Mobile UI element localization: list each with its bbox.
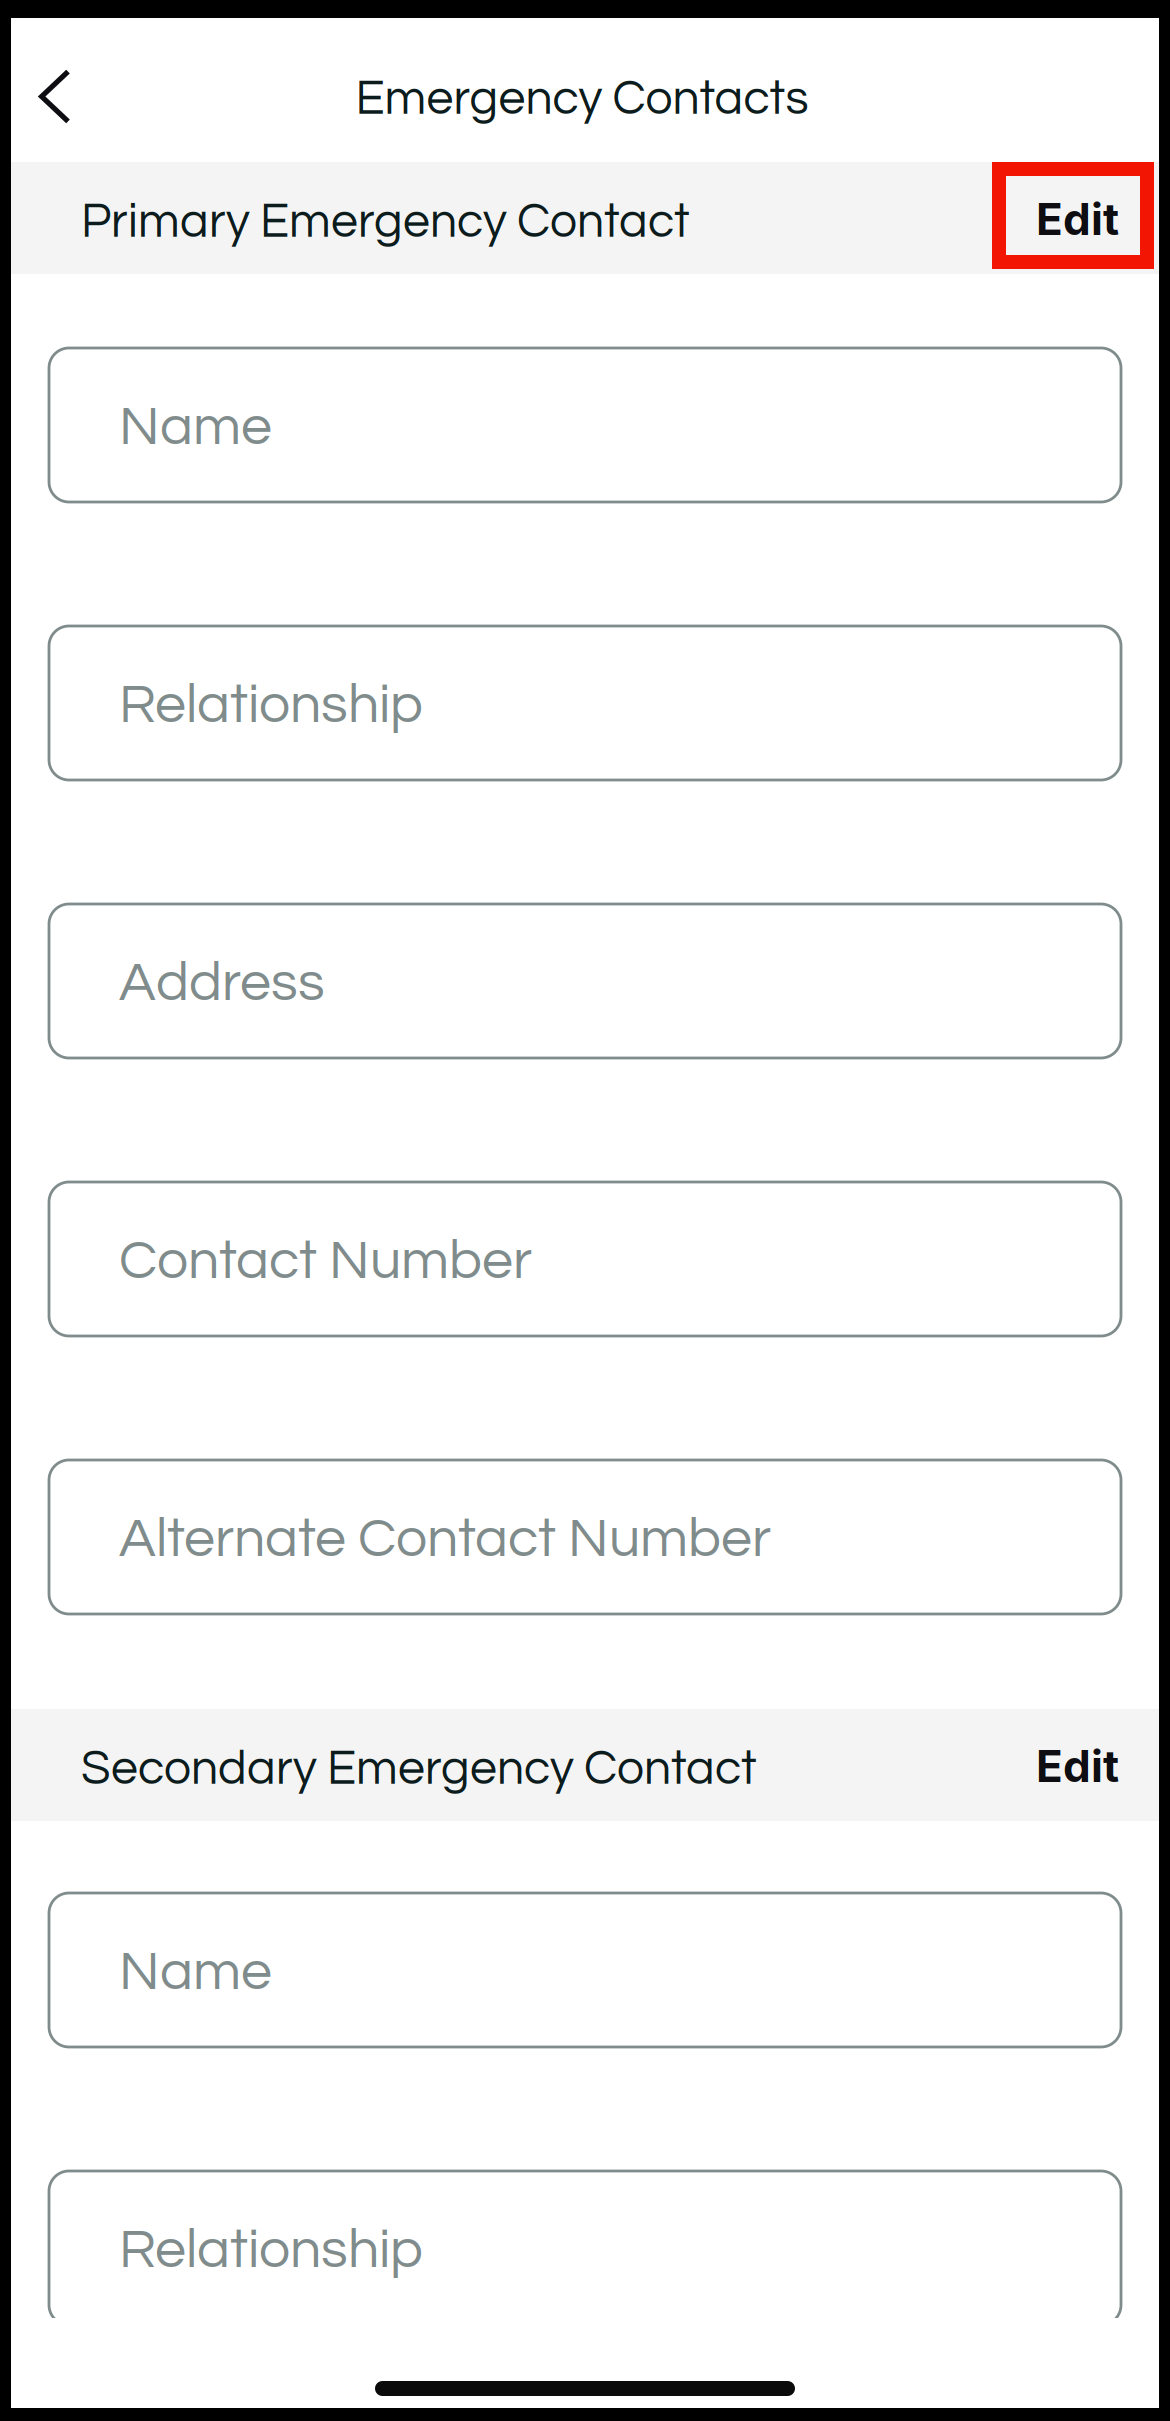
button[interactable]: Edit (959, 1709, 1119, 1821)
staticText: Primary Emergency Contact (81, 197, 690, 247)
button[interactable]: Relationship (49, 626, 1121, 780)
button[interactable]: Edit (959, 162, 1119, 274)
button[interactable]: Address (49, 904, 1121, 1058)
staticText: Emergency Contacts (355, 74, 808, 124)
staticText: Alternate Contact Number (119, 1510, 771, 1567)
staticText: Edit (1036, 1739, 1119, 1793)
staticText: Edit (1036, 192, 1119, 246)
button[interactable]: Relationship (49, 2171, 1121, 2325)
staticText: Relationship (119, 2221, 423, 2278)
staticText: Name (119, 1943, 272, 2000)
button[interactable]: Name (49, 1893, 1121, 2047)
staticText: Address (119, 954, 325, 1011)
staticText: Secondary Emergency Contact (81, 1744, 757, 1794)
staticText: Contact Number (119, 1232, 532, 1289)
button[interactable]: Name (49, 348, 1121, 502)
staticText: Name (119, 398, 272, 455)
button[interactable]: Alternate Contact Number (49, 1460, 1121, 1614)
button[interactable]: Back (11, 18, 121, 162)
staticText: Relationship (119, 676, 423, 733)
button[interactable]: Contact Number (49, 1182, 1121, 1336)
